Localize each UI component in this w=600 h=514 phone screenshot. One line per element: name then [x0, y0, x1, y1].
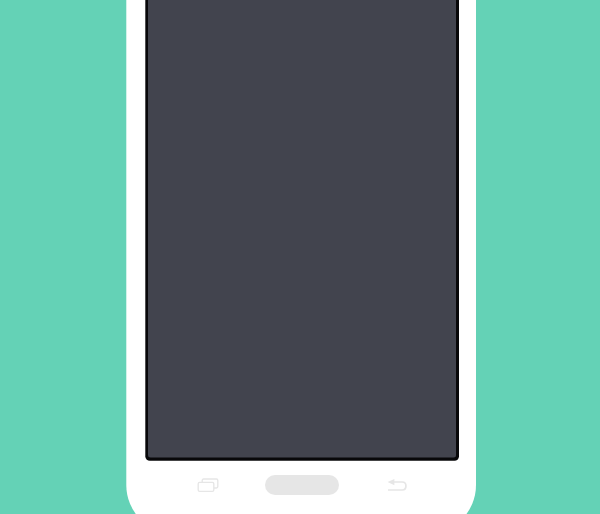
button[interactable]: Home [265, 475, 339, 495]
button[interactable]: Recent apps [182, 462, 234, 508]
button[interactable]: Back [370, 462, 422, 508]
